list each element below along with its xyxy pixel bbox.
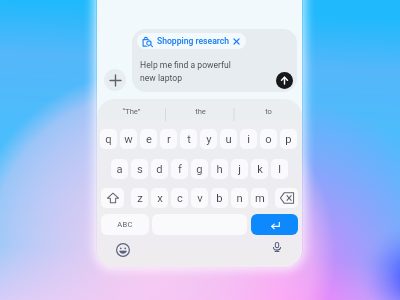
button[interactable]: y [200, 129, 217, 149]
button[interactable]: p [280, 129, 297, 149]
staticText: c [177, 192, 183, 205]
staticText: f [178, 163, 182, 176]
button[interactable]: n [231, 188, 248, 208]
button[interactable]: r [160, 129, 177, 149]
staticText: n [236, 192, 243, 205]
button[interactable]: w [120, 129, 137, 149]
button[interactable]: v [191, 188, 208, 208]
staticText: r [167, 133, 171, 146]
button[interactable]: m [251, 188, 268, 208]
button[interactable]: Emoji [116, 243, 130, 257]
staticText: i [247, 133, 250, 146]
button[interactable]: k [251, 159, 268, 179]
staticText: “The” [122, 107, 141, 116]
button[interactable]: f [171, 159, 188, 179]
staticText: b [216, 192, 223, 205]
button[interactable]: ABC [101, 214, 149, 235]
staticText: x [157, 192, 163, 205]
staticText: to [265, 107, 272, 116]
staticText: j [238, 163, 241, 176]
staticText: u [225, 133, 232, 146]
button[interactable]: t [180, 129, 197, 149]
button[interactable]: Enter [251, 214, 298, 235]
staticText: v [197, 192, 203, 205]
button[interactable]: Shift [101, 188, 124, 208]
staticText: d [156, 163, 163, 176]
staticText: Help me find a powerful [140, 60, 231, 70]
button[interactable]: Voice input [272, 242, 282, 252]
button[interactable]: x [151, 188, 168, 208]
staticText: m [255, 192, 265, 205]
staticText: h [216, 163, 223, 176]
staticText: z [137, 192, 143, 205]
button[interactable]: s [131, 159, 148, 179]
staticText: s [137, 163, 143, 176]
button[interactable]: a [111, 159, 128, 179]
staticText: y [206, 133, 212, 146]
staticText: o [265, 133, 272, 146]
staticText: k [257, 163, 263, 176]
button[interactable]: i [240, 129, 257, 149]
button[interactable]: Shopping research [137, 33, 246, 49]
button[interactable]: Backspace [275, 188, 298, 208]
button[interactable]: c [171, 188, 188, 208]
button[interactable]: q [100, 129, 117, 149]
staticText: w [124, 133, 133, 146]
staticText: new laptop [140, 73, 182, 83]
button[interactable]: u [220, 129, 237, 149]
button[interactable]: Shopping research [132, 29, 297, 92]
button[interactable]: j [231, 159, 248, 179]
button[interactable]: Add attachment [104, 69, 126, 91]
staticText: e [146, 133, 152, 146]
staticText: ABC [117, 220, 133, 229]
staticText: t [187, 133, 191, 146]
staticText: the [195, 107, 206, 116]
button[interactable]: h [211, 159, 228, 179]
button[interactable]: Send [276, 72, 293, 89]
staticText: q [105, 133, 112, 146]
button[interactable]: z [131, 188, 148, 208]
button[interactable]: b [211, 188, 228, 208]
button[interactable]: d [151, 159, 168, 179]
button[interactable]: l [271, 159, 288, 179]
button[interactable]: e [140, 129, 157, 149]
button[interactable]: the [166, 99, 234, 123]
button[interactable]: g [191, 159, 208, 179]
staticText: l [278, 163, 281, 176]
staticText: p [285, 133, 292, 146]
staticText: Shopping research [157, 36, 229, 46]
staticText: g [196, 163, 203, 176]
button[interactable]: to [234, 99, 302, 123]
button[interactable]: o [260, 129, 277, 149]
button[interactable]: “The” [97, 99, 166, 123]
staticText: a [116, 163, 123, 176]
